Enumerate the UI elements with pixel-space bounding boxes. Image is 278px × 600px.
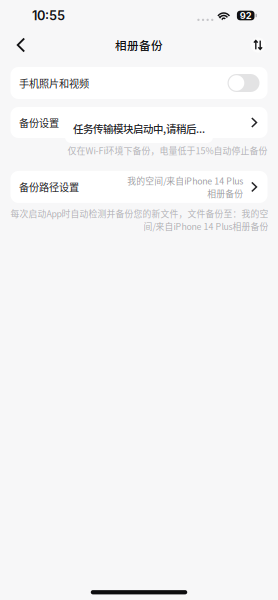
staticText: 手机照片和视频 — [19, 76, 89, 90]
button[interactable]: 手机照片和视频 — [10, 67, 267, 99]
button[interactable]: 传输 — [240, 31, 276, 59]
staticText: 备份设置 — [19, 115, 59, 130]
button[interactable]: 备份路径设置 — [10, 171, 267, 203]
button[interactable]: 返回 — [3, 31, 39, 59]
staticText: 备份路径设置 — [19, 180, 79, 194]
staticText: 相册备份 — [115, 37, 163, 53]
staticText: 92 — [240, 10, 252, 21]
staticText: 每次启动App时自动检测并备份您的新文件，文件备份至：我的空间/来自iPhone… — [10, 207, 268, 232]
staticText: 我的空间/来自iPhone 14 Plus相册备份 — [127, 174, 243, 200]
button[interactable]: 备份设置 — [10, 107, 267, 138]
staticText: 仅在Wi-Fi环境下备份，电量低于15%自动停止备份 — [67, 144, 267, 157]
staticText: 10:55 — [32, 8, 65, 23]
staticText: 任务传输模块启动中,请稍后... — [73, 121, 205, 136]
